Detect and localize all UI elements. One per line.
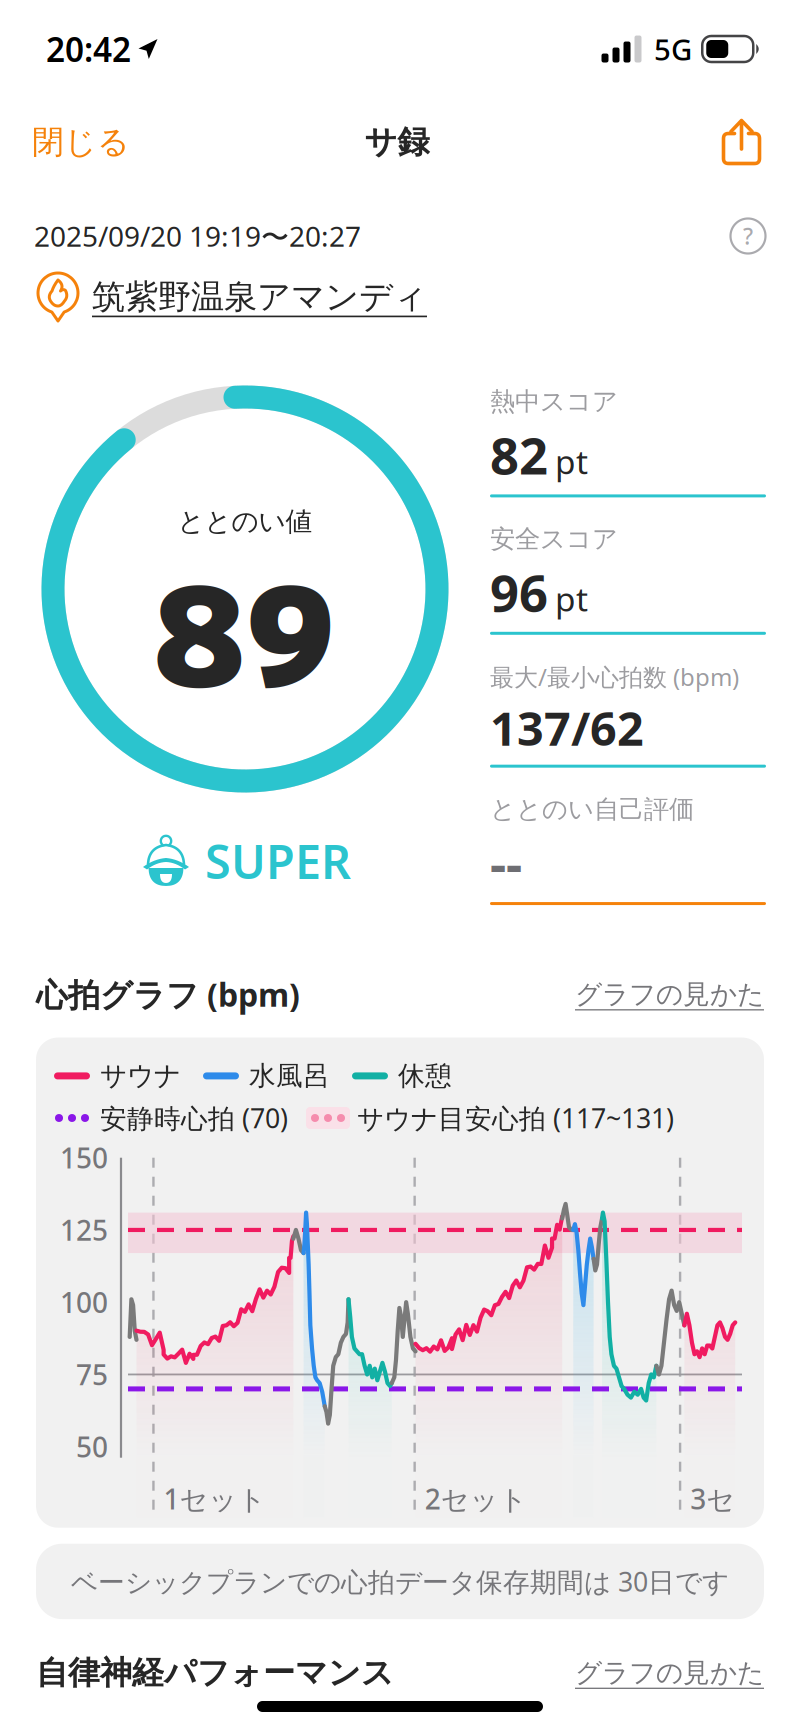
staticText: ? xyxy=(743,221,753,251)
staticText: 安全スコア xyxy=(490,523,618,554)
button[interactable]: ヘルプ xyxy=(728,216,768,256)
staticText: 水風呂 xyxy=(249,1059,330,1092)
staticText: グラフの見かた xyxy=(575,1656,764,1689)
staticText: 筑紫野温泉アマンディ xyxy=(92,276,427,317)
button[interactable]: 閉じる xyxy=(32,110,130,174)
staticText: 5G xyxy=(654,29,692,68)
staticText: 137/62 xyxy=(490,697,644,759)
staticText: 最大/最小心拍数 (bpm) xyxy=(490,661,739,693)
staticText: サウナ目安心拍 (117~131) xyxy=(357,1100,674,1136)
staticText: 150 xyxy=(60,1139,108,1176)
staticText: サ録 xyxy=(364,122,429,162)
staticText: 125 xyxy=(60,1211,108,1249)
staticText: pt xyxy=(555,439,588,483)
staticText: 熱中スコア xyxy=(490,386,618,417)
staticText: -- xyxy=(490,829,522,896)
staticText: 96 xyxy=(490,558,548,626)
button[interactable]: 筑紫野温泉アマンディ xyxy=(34,270,768,324)
staticText: 休憩 xyxy=(398,1059,452,1092)
button[interactable]: グラフの見かた xyxy=(575,1656,764,1689)
staticText: 安静時心拍 (70) xyxy=(100,1100,288,1136)
staticText: ととのい自己評価 xyxy=(490,794,694,825)
staticText: 100 xyxy=(60,1284,108,1321)
staticText: pt xyxy=(555,576,588,621)
staticText: 20:42 xyxy=(46,27,131,71)
staticText: 82 xyxy=(490,421,548,488)
button[interactable]: 共有 xyxy=(721,114,762,170)
staticText: 1セット xyxy=(164,1480,267,1517)
staticText: 心拍グラフ (bpm) xyxy=(36,973,300,1015)
staticText: 閉じる xyxy=(32,122,130,162)
staticText: ベーシックプランでの心拍データ保存期間は 30日です xyxy=(71,1564,729,1599)
staticText: 2セット xyxy=(425,1480,528,1517)
button[interactable]: グラフの見かた xyxy=(575,978,764,1011)
staticText: 2025/09/20 19:19〜20:27 xyxy=(34,217,361,255)
staticText: 75 xyxy=(76,1356,108,1393)
staticText: 50 xyxy=(76,1428,108,1465)
staticText: サウナ xyxy=(100,1059,181,1092)
staticText: グラフの見かた xyxy=(575,978,764,1011)
staticText: 89 xyxy=(154,528,336,727)
staticText: SUPER xyxy=(205,830,351,892)
staticText: 3セ xyxy=(690,1480,735,1517)
staticText: ととのい値 xyxy=(177,505,312,538)
staticText: 自律神経パフォーマンス xyxy=(36,1653,394,1692)
